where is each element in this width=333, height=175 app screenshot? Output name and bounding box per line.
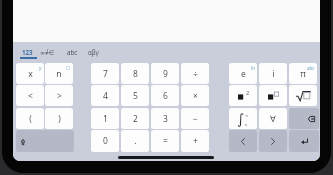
staticText: 8 <box>133 68 138 80</box>
button[interactable]: x <box>16 63 44 84</box>
button[interactable]: π <box>289 63 317 84</box>
staticText: x <box>28 68 33 80</box>
staticText: + <box>193 135 198 147</box>
button[interactable]: 4 <box>91 85 119 106</box>
button[interactable]: αβγ <box>82 43 104 61</box>
button[interactable]: 123 <box>16 43 38 61</box>
staticText: y <box>39 65 42 71</box>
button[interactable]: − <box>181 108 209 129</box>
button[interactable]: Power <box>259 85 287 106</box>
button[interactable]: 6 <box>151 85 179 106</box>
button[interactable]: Square <box>229 85 257 106</box>
staticText: > <box>57 90 62 102</box>
button[interactable]: e <box>229 63 257 84</box>
staticText: π <box>300 68 306 80</box>
button[interactable]: 2 <box>121 108 149 129</box>
button[interactable]: + <box>181 130 209 152</box>
button[interactable]: Definite integral <box>229 108 257 129</box>
button[interactable]: Shift <box>16 130 74 152</box>
button[interactable]: ∀ <box>259 108 287 129</box>
button[interactable]: 1 <box>91 108 119 129</box>
button[interactable]: Square root <box>289 85 317 106</box>
button[interactable]: > <box>45 85 73 106</box>
staticText: ∞≠∈ <box>40 48 55 56</box>
staticText: 9 <box>163 68 168 80</box>
staticText: = <box>163 135 168 147</box>
button[interactable]: i <box>259 63 287 84</box>
staticText: 5 <box>133 90 138 102</box>
staticText: × <box>193 90 198 102</box>
staticText: abc <box>67 48 78 56</box>
button[interactable]: abc <box>61 43 83 61</box>
staticText: ( <box>29 113 32 125</box>
button[interactable]: × <box>181 85 209 106</box>
staticText: 1 <box>103 113 108 125</box>
button[interactable]: . <box>121 130 149 152</box>
button[interactable]: 5 <box>121 85 149 106</box>
staticText: 2 <box>246 89 250 97</box>
staticText: ∞ <box>245 113 249 118</box>
staticText: − <box>193 113 198 125</box>
staticText: 0 <box>103 135 108 147</box>
button[interactable]: ∞≠∈ <box>36 43 58 61</box>
staticText: ÷ <box>193 68 198 80</box>
staticText: 2 <box>133 113 138 125</box>
staticText: 4 <box>103 90 108 102</box>
staticText: n <box>56 68 62 80</box>
button[interactable]: Backspace <box>289 108 319 129</box>
button[interactable]: = <box>151 130 179 152</box>
staticText: 6 <box>163 90 168 102</box>
button[interactable]: Next <box>259 130 287 152</box>
staticText: ) <box>58 113 61 125</box>
button[interactable]: Enter <box>289 130 319 152</box>
staticText: ln <box>251 65 255 71</box>
staticText: 3 <box>163 113 168 125</box>
staticText: < <box>28 90 33 102</box>
button[interactable]: 9 <box>151 63 179 84</box>
button[interactable]: < <box>16 85 44 106</box>
button[interactable]: ÷ <box>181 63 209 84</box>
button[interactable]: n <box>45 63 73 84</box>
staticText: 0 <box>245 123 248 126</box>
staticText: 7 <box>103 68 108 80</box>
staticText: i <box>272 68 275 80</box>
button[interactable]: 8 <box>121 63 149 84</box>
staticText: ∫ <box>237 111 245 127</box>
button[interactable]: 3 <box>151 108 179 129</box>
staticText: ∀ <box>270 114 276 124</box>
staticText: αβγ <box>88 48 99 56</box>
staticText: . <box>134 135 137 147</box>
button[interactable]: 7 <box>91 63 119 84</box>
button[interactable]: Previous <box>229 130 257 152</box>
button[interactable]: 0 <box>91 130 119 152</box>
button[interactable]: ( <box>16 108 44 129</box>
staticText: abc <box>307 65 315 71</box>
staticText: □ <box>66 65 71 70</box>
button[interactable]: ) <box>45 108 73 129</box>
staticText: e <box>241 68 246 80</box>
staticText: 123 <box>22 48 33 56</box>
